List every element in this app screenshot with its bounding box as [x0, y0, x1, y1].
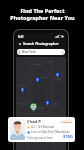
staticText: Find The Perfect: [20, 7, 65, 14]
button[interactable]: Chad P.: [8, 117, 75, 142]
staticText: 4.2 | (23 Reviews): [31, 125, 55, 129]
button[interactable]: Available: [61, 120, 72, 123]
button[interactable]: Close: [18, 42, 22, 46]
staticText: Package starts from: [27, 136, 54, 140]
staticText: Photographer Near You: [10, 14, 75, 21]
staticText: Lives in New York, Manhattan: [31, 130, 70, 134]
staticText: 9:41: [18, 35, 24, 39]
button[interactable]: New York: [18, 49, 64, 55]
staticText: New York: [22, 50, 36, 54]
staticText: Available: [61, 120, 72, 123]
staticText: Chad P.: [27, 119, 42, 124]
staticText: $150: [63, 134, 73, 140]
staticText: Search Photographer: [23, 41, 59, 46]
